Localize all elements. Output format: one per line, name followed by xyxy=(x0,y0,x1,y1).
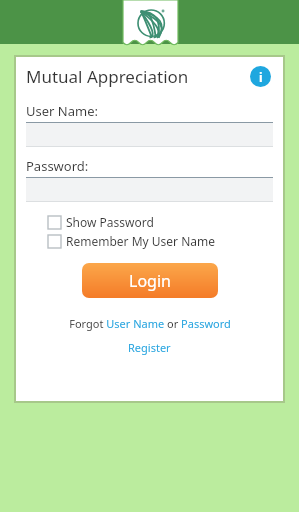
button[interactable] xyxy=(26,178,273,202)
staticText: Forgot User Name or Password xyxy=(69,316,231,331)
staticText: Mutual Appreciation xyxy=(26,65,189,88)
button[interactable]: Show Password xyxy=(26,214,273,230)
button[interactable]: Remember My User Name xyxy=(26,233,273,249)
button[interactable]: Login xyxy=(82,263,218,298)
button[interactable]: Forgot User Name or Password xyxy=(69,316,231,331)
staticText: Login xyxy=(129,270,171,292)
staticText: i xyxy=(259,69,263,85)
button[interactable]: Register xyxy=(128,340,171,355)
button[interactable]: Information xyxy=(250,66,271,87)
staticText: Register xyxy=(128,340,171,355)
button[interactable] xyxy=(26,123,273,147)
staticText: Show Password xyxy=(66,214,154,230)
staticText: Password: xyxy=(26,157,89,175)
staticText: Remember My User Name xyxy=(66,233,215,249)
staticText: User Name: xyxy=(26,102,98,120)
